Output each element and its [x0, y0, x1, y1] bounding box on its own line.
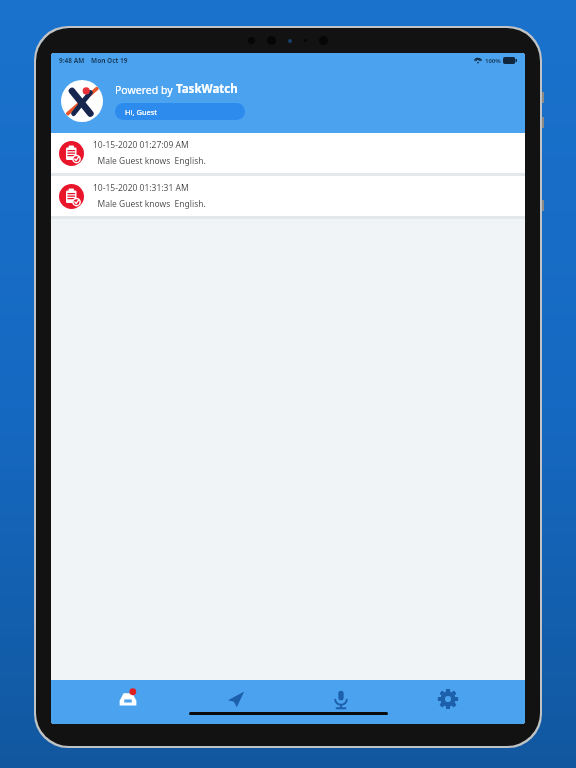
staticText: 100% — [485, 57, 501, 65]
button[interactable]: Settings — [418, 684, 478, 714]
staticText: Hi, Guest — [125, 107, 158, 117]
staticText: Powered by — [115, 83, 176, 97]
staticText: Mon Oct 19 — [91, 56, 128, 65]
staticText: Male Guest knows English. — [93, 155, 206, 167]
button[interactable]: Voice — [311, 684, 371, 714]
button[interactable]: 10-15-2020 01:31:31 AM — [51, 176, 525, 219]
staticText: 10-15-2020 01:27:09 AM — [93, 139, 189, 151]
button[interactable]: Hi, Guest — [115, 103, 245, 120]
button[interactable]: 10-15-2020 01:27:09 AM — [51, 133, 525, 176]
staticText: TaskWatch — [176, 81, 238, 97]
button[interactable]: Inbox — [98, 684, 158, 714]
button[interactable]: Send — [205, 684, 265, 714]
staticText: 10-15-2020 01:31:31 AM — [93, 182, 189, 194]
staticText: 9:48 AM — [59, 56, 85, 65]
button[interactable]: App logo — [61, 80, 103, 122]
staticText: Male Guest knows English. — [93, 198, 206, 210]
